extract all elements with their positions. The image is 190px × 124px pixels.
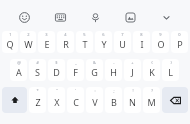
staticText: R bbox=[63, 38, 69, 50]
staticText: ( bbox=[151, 60, 153, 65]
button[interactable]: 4 bbox=[57, 31, 74, 53]
staticText: ) bbox=[170, 60, 172, 65]
staticText: @ bbox=[17, 60, 21, 65]
staticText: D bbox=[53, 66, 60, 78]
staticText: C bbox=[73, 96, 79, 108]
staticText: L bbox=[168, 66, 173, 78]
staticText: V bbox=[92, 96, 98, 108]
staticText: G bbox=[91, 66, 98, 78]
button[interactable]: ! bbox=[124, 87, 141, 113]
staticText: _ bbox=[75, 60, 77, 65]
staticText: " bbox=[56, 88, 58, 93]
staticText: B bbox=[111, 96, 117, 108]
button[interactable]: Keyboard settings bbox=[49, 6, 71, 28]
staticText: A bbox=[16, 66, 22, 78]
staticText: H bbox=[110, 66, 117, 78]
button[interactable]: : bbox=[86, 87, 103, 113]
staticText: S bbox=[35, 66, 40, 78]
button[interactable]: ) bbox=[162, 59, 179, 81]
staticText: Q bbox=[6, 38, 14, 50]
button[interactable]: 3 bbox=[38, 31, 55, 53]
staticText: T bbox=[82, 38, 88, 50]
button[interactable]: Emoji bbox=[13, 6, 35, 28]
staticText: F bbox=[73, 66, 78, 78]
button[interactable]: & bbox=[86, 59, 103, 81]
button[interactable]: 7 bbox=[114, 31, 131, 53]
staticText: ? bbox=[151, 88, 153, 93]
staticText: * bbox=[36, 88, 39, 93]
staticText: + bbox=[131, 60, 134, 65]
staticText: & bbox=[93, 60, 96, 65]
staticText: ! bbox=[132, 88, 134, 93]
button[interactable]: " bbox=[48, 87, 65, 113]
staticText: - bbox=[113, 60, 115, 65]
button[interactable]: 5 bbox=[76, 31, 93, 53]
button[interactable]: ; bbox=[105, 87, 122, 113]
staticText: 6 bbox=[102, 32, 105, 37]
button[interactable]: Stickers bbox=[119, 6, 141, 28]
button[interactable]: 2 bbox=[20, 31, 36, 53]
button[interactable]: 9 bbox=[152, 31, 169, 53]
staticText: Z bbox=[35, 96, 41, 108]
staticText: W bbox=[24, 38, 33, 50]
staticText: ' bbox=[75, 88, 76, 93]
staticText: K bbox=[149, 66, 155, 78]
staticText: U bbox=[119, 38, 126, 50]
staticText: I bbox=[140, 38, 144, 50]
staticText: 8 bbox=[140, 32, 143, 37]
button[interactable]: 6 bbox=[95, 31, 112, 53]
button[interactable]: Voice input bbox=[84, 6, 106, 28]
button[interactable]: 0 bbox=[171, 31, 188, 53]
staticText: 7 bbox=[121, 32, 124, 37]
button[interactable]: _ bbox=[67, 59, 84, 81]
staticText: 0 bbox=[178, 32, 181, 37]
staticText: ; bbox=[113, 88, 115, 93]
staticText: $ bbox=[55, 60, 58, 65]
staticText: 4 bbox=[64, 32, 67, 37]
button[interactable]: ? bbox=[143, 87, 160, 113]
button[interactable]: * bbox=[29, 87, 46, 113]
staticText: N bbox=[129, 96, 136, 108]
button[interactable]: + bbox=[124, 59, 141, 81]
button[interactable]: # bbox=[29, 59, 46, 81]
staticText: 3 bbox=[45, 32, 48, 37]
button[interactable]: - bbox=[105, 59, 122, 81]
staticText: 1 bbox=[9, 32, 12, 37]
staticText: M bbox=[147, 96, 156, 108]
staticText: 5 bbox=[83, 32, 86, 37]
staticText: O bbox=[157, 38, 165, 50]
staticText: J bbox=[131, 66, 134, 78]
button[interactable]: Backspace bbox=[162, 87, 188, 113]
staticText: E bbox=[44, 38, 50, 50]
button[interactable]: Shift bbox=[2, 87, 27, 113]
button[interactable]: ( bbox=[143, 59, 160, 81]
button[interactable]: 8 bbox=[133, 31, 150, 53]
staticText: 9 bbox=[159, 32, 162, 37]
staticText: : bbox=[94, 88, 96, 93]
staticText: X bbox=[54, 96, 60, 108]
button[interactable]: ' bbox=[67, 87, 84, 113]
button[interactable]: @ bbox=[10, 59, 27, 81]
staticText: # bbox=[36, 60, 39, 65]
staticText: P bbox=[177, 38, 183, 50]
button[interactable]: Hide keyboard bbox=[155, 6, 177, 28]
staticText: Y bbox=[101, 38, 107, 50]
staticText: 2 bbox=[27, 32, 30, 37]
button[interactable]: 1 bbox=[2, 31, 18, 53]
button[interactable]: $ bbox=[48, 59, 65, 81]
